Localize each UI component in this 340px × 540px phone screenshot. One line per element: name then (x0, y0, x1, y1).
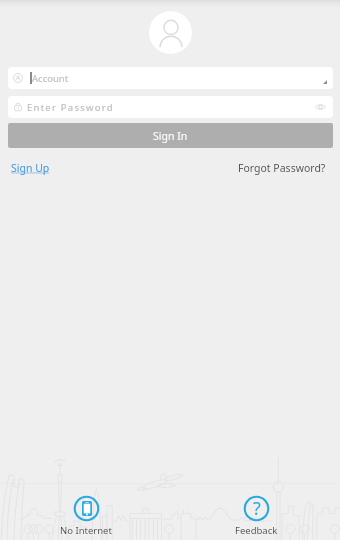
staticText: Account (32, 72, 69, 85)
button[interactable]: Sign Up (11, 161, 50, 175)
button[interactable]: Show password (312, 99, 328, 115)
button[interactable]: Forgot Password? (238, 161, 326, 175)
staticText: Sign Up (11, 161, 50, 175)
staticText: ? (253, 496, 261, 521)
staticText: Sign In (153, 129, 188, 143)
button[interactable]: Enter Password (8, 96, 333, 118)
staticText: Forgot Password? (238, 161, 326, 175)
staticText: No Internet (60, 524, 112, 537)
staticText: Enter Password (27, 101, 114, 114)
staticText: Feedback (235, 524, 278, 537)
button[interactable]: Sign In (8, 123, 333, 148)
button[interactable]: Account (8, 67, 333, 89)
button[interactable]: ? (226, 495, 286, 537)
button[interactable]: No Internet (56, 495, 116, 537)
